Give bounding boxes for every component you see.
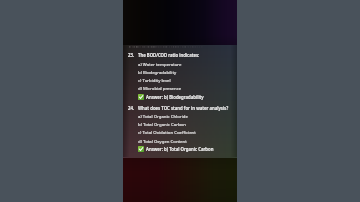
staticText: d) Total Oxygen Content (138, 138, 187, 144)
staticText: a) Total Organic Chloride (138, 113, 188, 119)
staticText: b) Biodegradability (138, 69, 177, 75)
button[interactable]: c) Total Oxidation Coefficient (138, 128, 196, 136)
button[interactable]: d) Microbial presence (138, 84, 182, 92)
button[interactable]: d) Total Oxygen Content (138, 137, 187, 145)
staticText: c) Total Oxidation Coefficient (138, 129, 196, 135)
button[interactable]: a) Water temperature (138, 60, 182, 68)
button[interactable]: 23. (128, 51, 200, 59)
staticText: c) Turbidity level (138, 77, 171, 83)
button[interactable]: 24. (128, 104, 229, 112)
staticText: 24. (128, 105, 135, 111)
button[interactable]: b) Biodegradability (138, 68, 177, 76)
staticText: d) Microbial presence (138, 85, 182, 91)
staticText: The BOD/COD ratio indicates: (138, 52, 200, 58)
other: Correct answer (138, 146, 144, 152)
button[interactable]: 23. (123, 0, 237, 202)
staticText: Answer: b) Total Organic Carbon (146, 146, 214, 152)
staticText: Answer: b) Biodegradability (146, 94, 204, 100)
staticText: b) Total Organic Carbon (138, 121, 186, 127)
other: Correct answer (138, 94, 144, 100)
button[interactable]: b) Total Organic Carbon (138, 120, 186, 128)
staticText: What does TOC stand for in water analysi… (138, 105, 229, 111)
button[interactable]: c) Turbidity level (138, 76, 171, 84)
button[interactable]: Correct answer (138, 145, 214, 153)
staticText: a) Water temperature (138, 61, 182, 67)
staticText: 23. (128, 52, 135, 58)
button[interactable]: a) Total Organic Chloride (138, 112, 188, 120)
button[interactable]: Correct answer (138, 93, 204, 101)
